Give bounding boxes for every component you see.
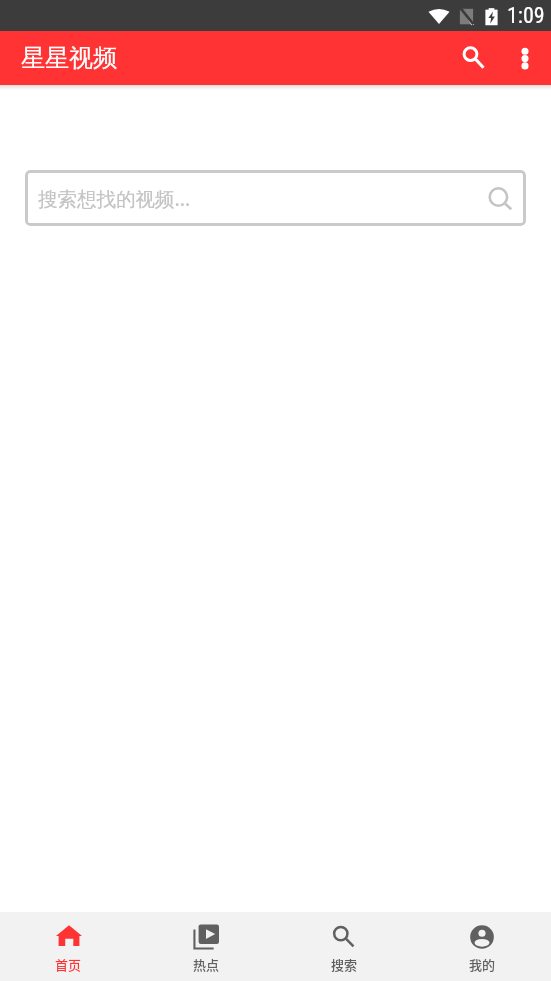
button[interactable]: 搜索 (275, 912, 413, 981)
button[interactable]: 我的 (413, 912, 551, 981)
staticText: 1:09 (507, 3, 545, 29)
staticText: 星星视频 (21, 43, 117, 73)
staticText: 搜索 (331, 955, 358, 974)
staticText: 我的 (469, 955, 496, 974)
button[interactable]: 搜索想找的视频... (25, 170, 526, 226)
button[interactable]: Search (445, 32, 498, 85)
staticText: 首页 (55, 955, 82, 974)
button[interactable]: 热点 (137, 912, 275, 981)
button[interactable]: More options (498, 32, 551, 85)
staticText: 热点 (193, 955, 220, 974)
button[interactable]: 首页 (0, 912, 137, 981)
staticText: 搜索想找的视频... (38, 185, 191, 212)
